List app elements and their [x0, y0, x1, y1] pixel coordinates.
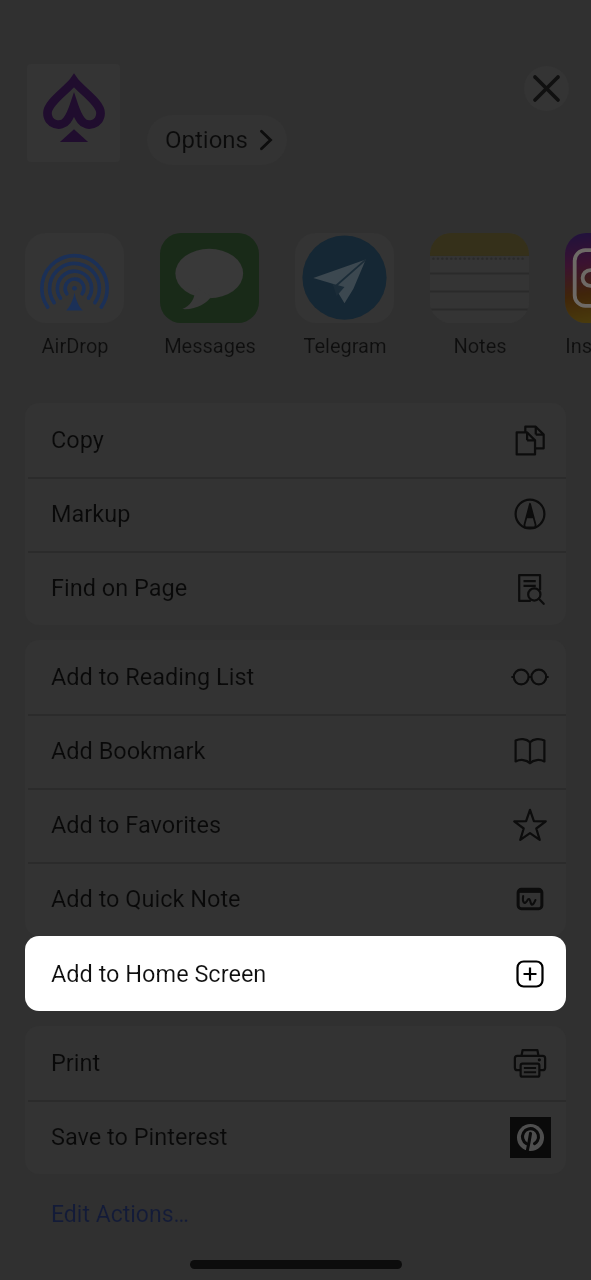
- button[interactable]: Copy: [25, 403, 566, 477]
- button[interactable]: Telegram: [295, 233, 394, 357]
- button[interactable]: Close: [524, 66, 569, 111]
- staticText: Save to Pinterest: [51, 1123, 228, 1151]
- button[interactable]: Notes: [430, 233, 529, 357]
- button[interactable]: Add to Quick Note: [25, 862, 566, 936]
- button[interactable]: Options: [147, 115, 287, 165]
- button[interactable]: Save to Pinterest: [25, 1100, 566, 1174]
- staticText: Add to Quick Note: [51, 885, 241, 913]
- staticText: Copy: [51, 426, 104, 454]
- staticText: Add Bookmark: [51, 737, 206, 765]
- staticText: Edit Actions…: [51, 1201, 189, 1228]
- button[interactable]: Messages: [160, 233, 259, 357]
- staticText: Add to Home Screen: [51, 960, 267, 988]
- button[interactable]: Instagram: [565, 233, 591, 357]
- staticText: Telegram: [303, 334, 387, 357]
- staticText: Options: [165, 126, 249, 154]
- staticText: Add to Favorites: [51, 811, 222, 839]
- button[interactable]: Add to Reading List: [25, 640, 566, 714]
- staticText: AirDrop: [41, 334, 109, 357]
- button[interactable]: Markup: [25, 477, 566, 551]
- staticText: Instagram: [565, 334, 591, 357]
- staticText: Markup: [51, 500, 131, 528]
- button[interactable]: Add to Home Screen: [25, 936, 566, 1011]
- staticText: Notes: [453, 334, 507, 357]
- button[interactable]: Add to Favorites: [25, 788, 566, 862]
- staticText: Add to Reading List: [51, 663, 255, 691]
- staticText: Find on Page: [51, 574, 188, 602]
- staticText: Print: [51, 1049, 101, 1077]
- staticText: Messages: [164, 334, 256, 357]
- button[interactable]: Print: [25, 1026, 566, 1100]
- button[interactable]: Edit Actions…: [0, 1186, 591, 1242]
- button[interactable]: Add Bookmark: [25, 714, 566, 788]
- button[interactable]: Find on Page: [25, 551, 566, 625]
- button[interactable]: AirDrop: [25, 233, 124, 357]
